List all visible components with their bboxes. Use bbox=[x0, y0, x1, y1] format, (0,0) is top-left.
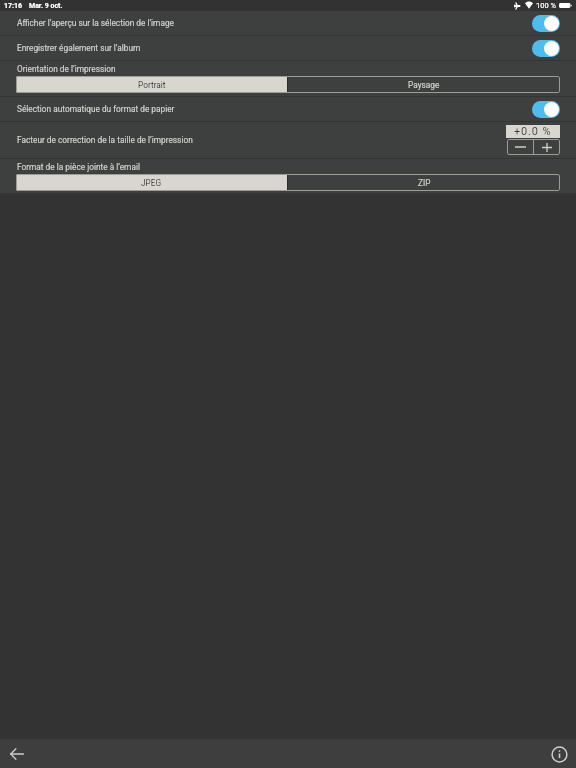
staticText: Sélection automatique du format de papie… bbox=[17, 104, 175, 114]
button[interactable]: Afficher l’aperçu sur la sélection de l’… bbox=[0, 11, 576, 35]
staticText: Mar. 9 oct. bbox=[29, 2, 63, 10]
staticText: Facteur de correction de la taille de l’… bbox=[17, 135, 193, 145]
button[interactable]: ZIP bbox=[288, 174, 560, 191]
button[interactable]: Enregistrer également sur l’album bbox=[0, 36, 576, 60]
staticText: +0.0 % bbox=[514, 125, 552, 138]
staticText: ZIP bbox=[418, 178, 431, 188]
staticText: JPEG bbox=[141, 178, 162, 188]
button[interactable]: Decrease bbox=[507, 139, 533, 155]
button[interactable]: Back bbox=[5, 742, 29, 766]
staticText: Orientation de l’impression bbox=[17, 64, 116, 74]
staticText: Afficher l’aperçu sur la sélection de l’… bbox=[17, 18, 174, 28]
button[interactable]: Enregistrer également sur l’album bbox=[532, 40, 560, 57]
button[interactable]: Afficher l’aperçu sur la sélection de l’… bbox=[532, 15, 560, 32]
button[interactable]: Increase bbox=[534, 139, 560, 155]
button[interactable]: Sélection automatique du format de papie… bbox=[0, 97, 576, 121]
button[interactable]: Portrait bbox=[16, 76, 287, 93]
button[interactable]: Paysage bbox=[288, 76, 560, 93]
staticText: 100 % bbox=[536, 1, 556, 10]
button[interactable]: Sélection automatique du format de papie… bbox=[532, 101, 560, 118]
button[interactable]: JPEG bbox=[16, 174, 287, 191]
staticText: Format de la pièce jointe à l’email bbox=[17, 162, 140, 172]
staticText: 17:16 bbox=[4, 2, 23, 10]
button[interactable]: Information bbox=[547, 742, 571, 766]
staticText: Portrait bbox=[138, 80, 166, 90]
staticText: Paysage bbox=[408, 80, 440, 90]
staticText: Enregistrer également sur l’album bbox=[17, 43, 141, 53]
